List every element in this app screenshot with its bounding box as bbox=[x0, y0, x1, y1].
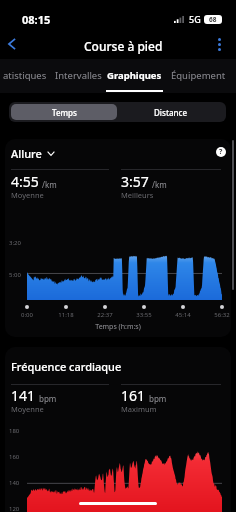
staticText: Course à pied bbox=[84, 38, 163, 54]
button[interactable]: Intervalles bbox=[51, 59, 105, 92]
staticText: Intervalles bbox=[55, 69, 102, 82]
staticText: 33:55 bbox=[134, 311, 154, 319]
button[interactable]: Équipement bbox=[168, 59, 228, 92]
staticText: Maximum bbox=[121, 404, 157, 414]
staticText: bpm bbox=[149, 393, 167, 404]
staticText: 08:15 bbox=[22, 12, 51, 27]
staticText: 141 bbox=[11, 386, 36, 405]
staticText: Meilleurs bbox=[121, 190, 154, 200]
staticText: bpm bbox=[39, 393, 57, 404]
staticText: Temps (h:m:s) bbox=[0, 322, 236, 332]
staticText: 68 bbox=[209, 15, 217, 24]
staticText: 140 bbox=[9, 479, 20, 487]
staticText: 180 bbox=[9, 427, 20, 435]
staticText: Fréquence cardiaque bbox=[11, 359, 122, 374]
staticText: /km bbox=[152, 179, 167, 190]
button[interactable]: Info bbox=[216, 147, 226, 157]
staticText: 3:20 bbox=[9, 239, 21, 247]
staticText: 120 bbox=[9, 505, 20, 512]
staticText: 22:37 bbox=[95, 311, 115, 319]
staticText: 11:18 bbox=[56, 311, 76, 319]
staticText: Graphiques bbox=[107, 69, 162, 82]
staticText: Distance bbox=[154, 107, 188, 118]
staticText: 0:00 bbox=[17, 311, 37, 319]
staticText: 5G bbox=[189, 13, 201, 25]
staticText: Moyenne bbox=[11, 404, 44, 414]
staticText: 5:00 bbox=[9, 271, 21, 279]
staticText: Allure bbox=[11, 146, 42, 160]
button[interactable]: Distance bbox=[117, 104, 224, 120]
button[interactable]: Graphiques bbox=[105, 59, 163, 92]
button[interactable]: atistiques bbox=[0, 59, 52, 92]
staticText: 3:57 bbox=[121, 172, 149, 191]
staticText: 160 bbox=[9, 453, 20, 461]
staticText: Équipement bbox=[171, 69, 226, 82]
button[interactable]: Back bbox=[0, 32, 24, 56]
button[interactable]: Allure bbox=[11, 146, 55, 160]
staticText: Moyenne bbox=[11, 190, 44, 200]
staticText: ? bbox=[219, 147, 223, 157]
button[interactable]: Temps bbox=[11, 104, 117, 120]
staticText: /km bbox=[42, 179, 57, 190]
staticText: atistiques bbox=[3, 69, 47, 82]
button[interactable]: More options bbox=[207, 32, 231, 56]
staticText: 56:32 bbox=[212, 311, 232, 319]
staticText: 45:14 bbox=[173, 311, 193, 319]
staticText: Temps bbox=[52, 107, 77, 118]
staticText: 4:55 bbox=[11, 172, 39, 191]
staticText: 161 bbox=[121, 386, 146, 405]
